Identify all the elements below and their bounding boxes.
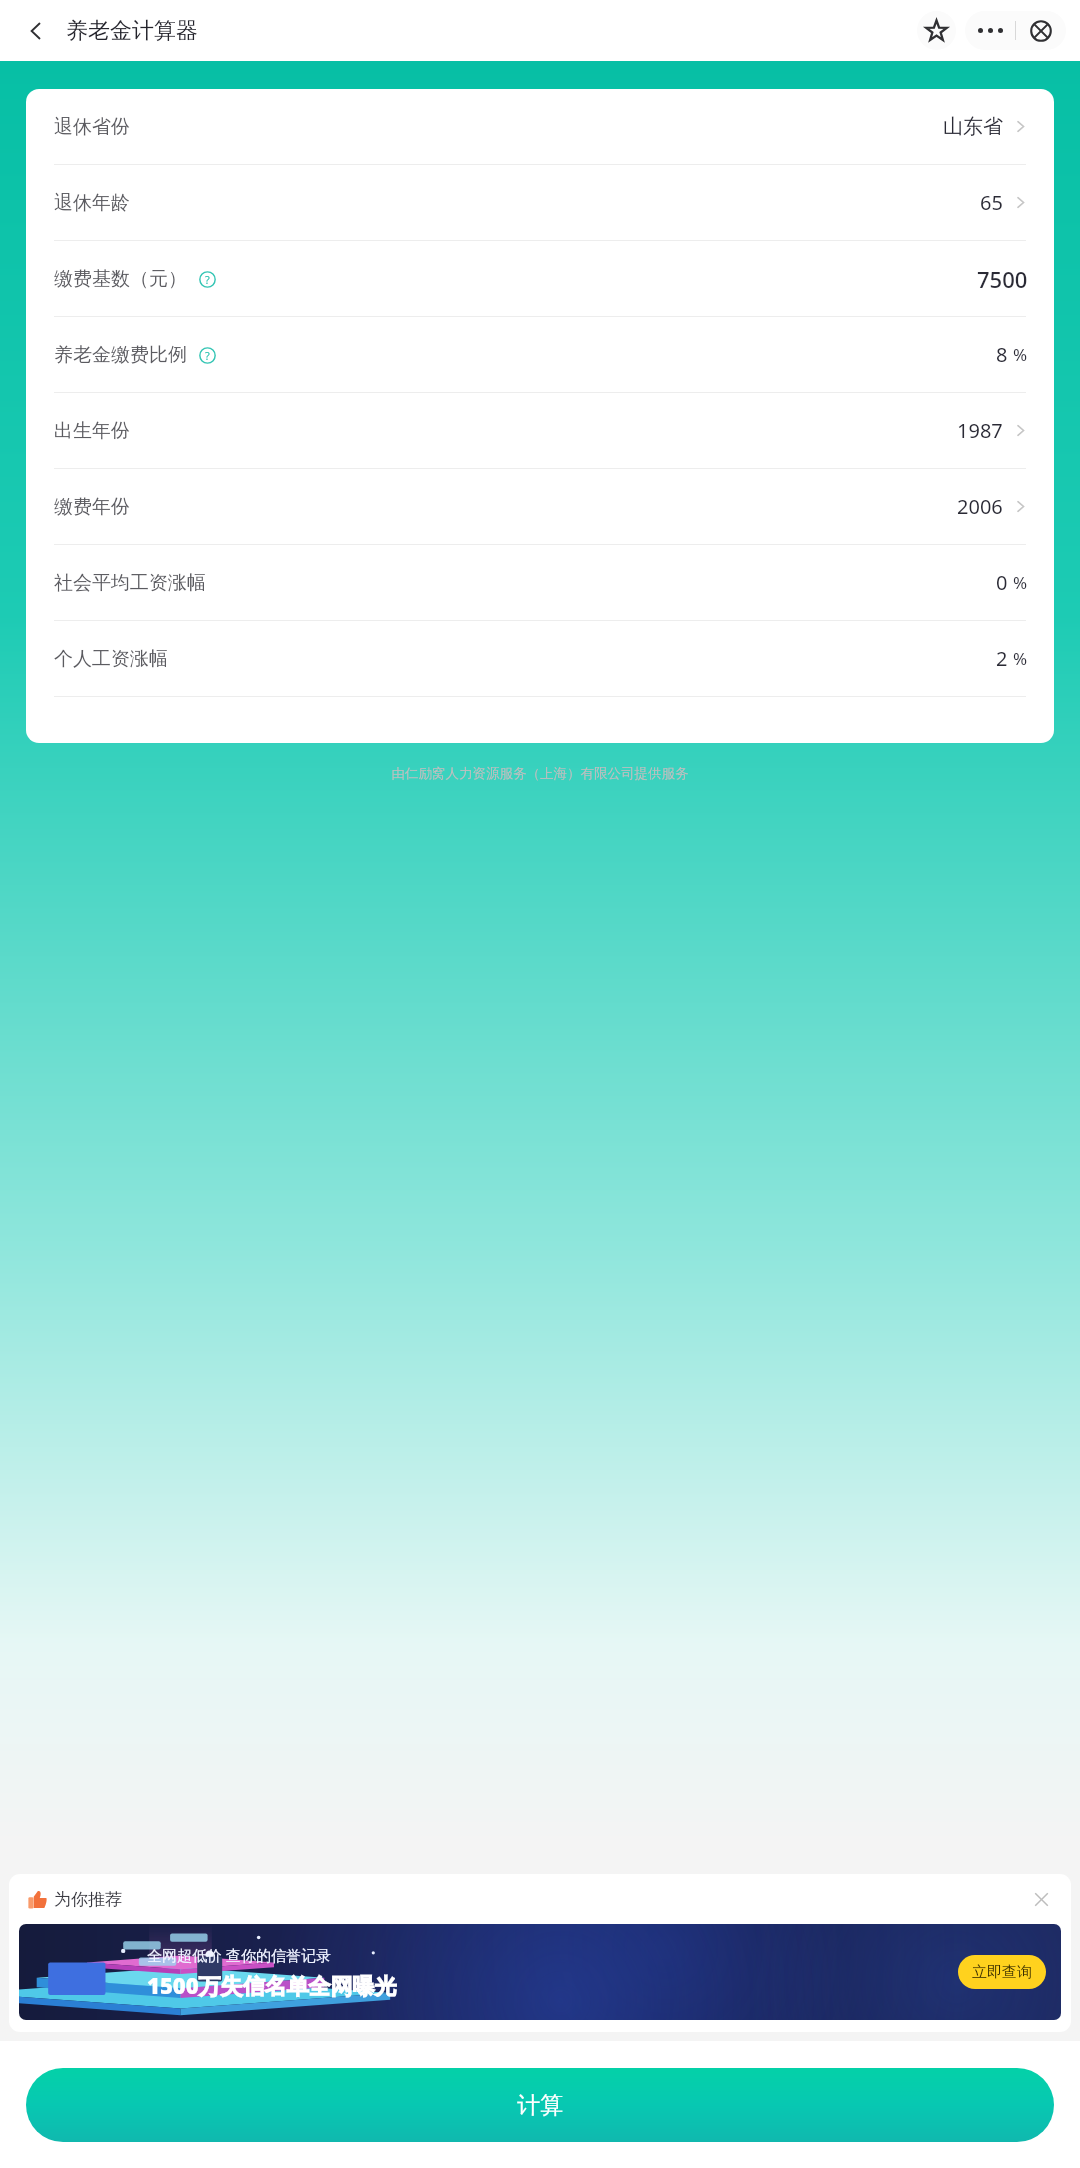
staticText: 全网超低价 查你的信誉记录 (147, 1945, 331, 1965)
staticText: ? (205, 348, 210, 363)
staticText: 为你推荐 (54, 1889, 122, 1910)
staticText: 缴费基数（元） (54, 267, 187, 291)
button[interactable]: 个人工资涨幅 (26, 621, 1054, 696)
staticText: 退休年龄 (54, 191, 130, 215)
staticText: 出生年份 (54, 419, 130, 443)
button[interactable]: 出生年份 (26, 393, 1054, 468)
staticText: 1500万失信名单全网曝光 (147, 1970, 397, 2000)
staticText: 个人工资涨幅 (54, 647, 168, 671)
button[interactable]: 退休省份 (26, 89, 1054, 164)
button[interactable]: Close ad (1025, 1883, 1057, 1915)
staticText: 由仁励窝人力资源服务（上海）有限公司提供服务 (0, 765, 1080, 782)
button[interactable]: Favorite (917, 11, 956, 50)
button[interactable]: 立即查询 (958, 1955, 1046, 1989)
button[interactable]: 退休年龄 (26, 165, 1054, 240)
staticText: 2 (996, 645, 1008, 672)
staticText: 0 (996, 569, 1008, 596)
staticText: 65 (980, 189, 1003, 216)
staticText: 1987 (957, 417, 1003, 444)
button[interactable]: More options (965, 11, 1015, 50)
button[interactable]: 全网超低价 查你的信誉记录 (19, 1924, 1061, 2020)
staticText: 社会平均工资涨幅 (54, 571, 206, 595)
button[interactable]: 缴费基数（元） (26, 241, 1054, 316)
staticText: 缴费年份 (54, 495, 130, 519)
button[interactable]: Close (1016, 11, 1066, 50)
staticText: % (1013, 647, 1028, 670)
staticText: 养老金计算器 (66, 17, 198, 45)
button[interactable]: 社会平均工资涨幅 (26, 545, 1054, 620)
staticText: 养老金缴费比例 (54, 343, 187, 367)
staticText: % (1013, 571, 1028, 594)
button[interactable]: 计算 (26, 2068, 1054, 2142)
staticText: 山东省 (943, 114, 1003, 139)
staticText: 7500 (977, 264, 1028, 294)
staticText: ? (205, 272, 210, 287)
staticText: 计算 (517, 2091, 563, 2120)
button[interactable]: 养老金缴费比例 (26, 317, 1054, 392)
button[interactable]: Help (194, 266, 220, 292)
button[interactable]: Help (194, 342, 220, 368)
staticText: 2006 (957, 493, 1003, 520)
button[interactable]: 缴费年份 (26, 469, 1054, 544)
staticText: 8 (996, 341, 1008, 368)
staticText: % (1013, 343, 1028, 366)
button[interactable]: Back (14, 9, 58, 53)
staticText: 立即查询 (972, 1963, 1032, 1982)
staticText: 退休省份 (54, 115, 130, 139)
